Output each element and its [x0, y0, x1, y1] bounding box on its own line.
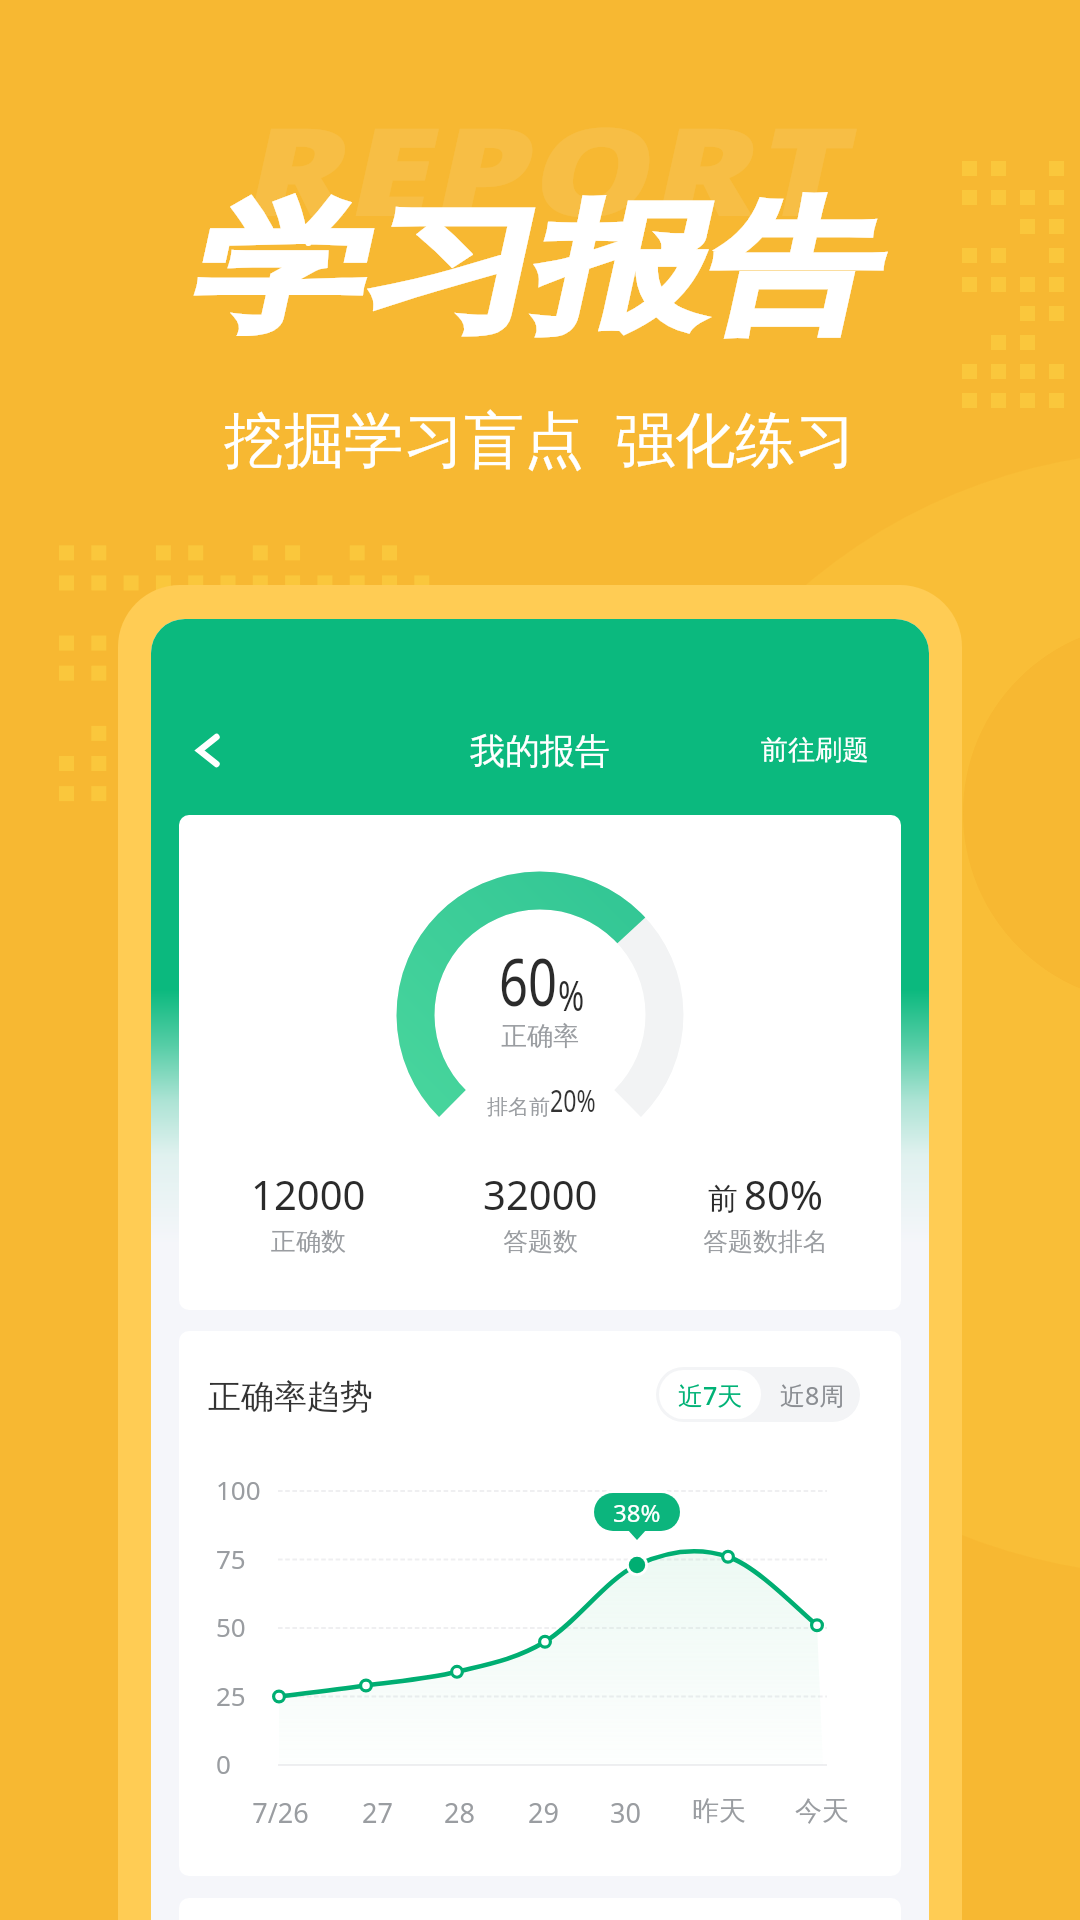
staticText: 前往刷题 — [761, 733, 869, 767]
staticText: 28 — [444, 1794, 475, 1831]
staticText: 挖掘学习盲点 强化练习 — [224, 397, 856, 479]
staticText: 38% — [613, 1496, 661, 1529]
staticText: 80% — [744, 1167, 823, 1221]
button[interactable]: 38% — [594, 1493, 680, 1531]
staticText: 排名前 — [487, 1094, 550, 1120]
staticText: 27 — [362, 1794, 393, 1831]
staticText: 近8周 — [780, 1378, 845, 1412]
button[interactable]: 近7天 — [659, 1370, 761, 1419]
staticText: 12000 — [251, 1167, 366, 1221]
staticText: 学习报告 — [129, 0, 951, 569]
button[interactable]: Back — [171, 713, 245, 787]
staticText: 前 — [708, 1180, 738, 1218]
staticText: 今天 — [795, 1794, 849, 1828]
staticText: 25 — [216, 1678, 246, 1713]
button[interactable]: 前往刷题 — [761, 733, 869, 767]
staticText: 7/26 — [252, 1794, 309, 1831]
staticText: 我的报告 — [470, 729, 610, 773]
staticText: REPORT — [185, 0, 920, 439]
staticText: 29 — [528, 1794, 559, 1831]
staticText: 0 — [216, 1746, 231, 1781]
staticText: 75 — [216, 1541, 246, 1576]
staticText: 60 — [499, 937, 557, 1026]
staticText: % — [558, 967, 585, 1023]
staticText: 答题数排名 — [703, 1226, 828, 1257]
staticText: 正确率趋势 — [208, 1376, 373, 1418]
staticText: 正确数 — [271, 1226, 346, 1257]
staticText: 100 — [216, 1472, 261, 1507]
staticText: 正确率 — [501, 1020, 579, 1053]
staticText: 20% — [550, 1080, 596, 1121]
staticText: 32000 — [483, 1167, 598, 1221]
button[interactable]: 近8周 — [764, 1367, 860, 1422]
staticText: 30 — [610, 1794, 641, 1831]
staticText: 昨天 — [692, 1794, 746, 1828]
staticText: 近7天 — [678, 1378, 743, 1412]
staticText: 50 — [216, 1609, 246, 1644]
staticText: 答题数 — [503, 1226, 578, 1257]
